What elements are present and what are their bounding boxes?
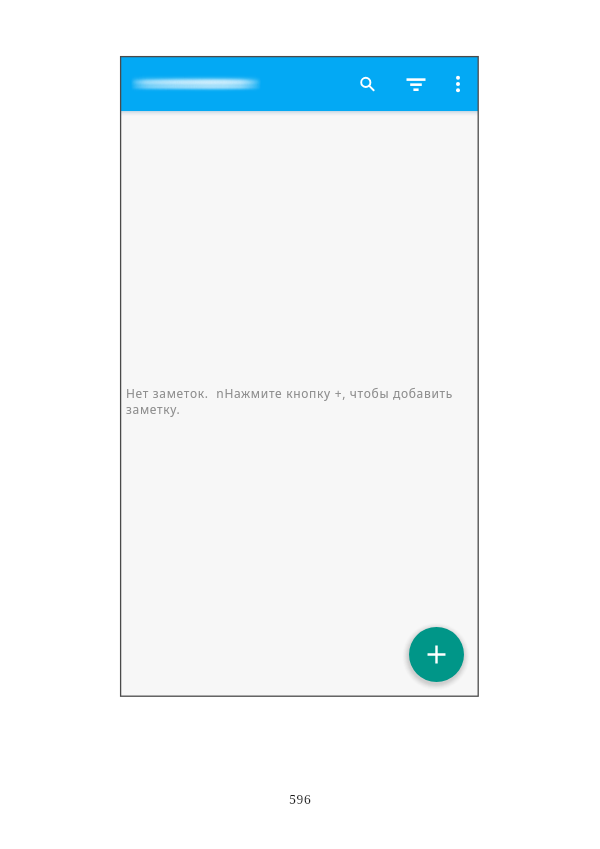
staticText: 596 bbox=[289, 790, 311, 808]
button[interactable]: Filter bbox=[396, 64, 436, 104]
button[interactable]: Add note bbox=[409, 627, 464, 682]
button[interactable]: More options bbox=[438, 64, 478, 104]
staticText: Нет заметок. nНажмите кнопку +, чтобы до… bbox=[126, 385, 458, 418]
button[interactable]: Search bbox=[347, 64, 387, 104]
